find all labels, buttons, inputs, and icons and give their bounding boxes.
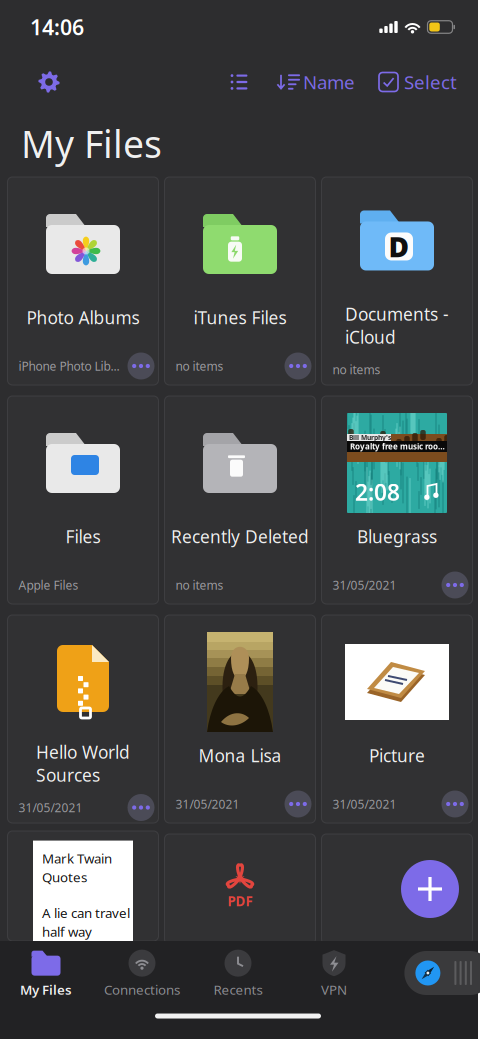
staticText: 2:08 bbox=[355, 477, 400, 507]
staticText: Quotes bbox=[42, 868, 87, 886]
staticText: PDF bbox=[227, 892, 252, 910]
button[interactable]: More options bbox=[127, 794, 154, 821]
button[interactable]: Hello World Sources bbox=[7, 615, 158, 823]
staticText: Royalty free music room.com bbox=[350, 441, 447, 452]
staticText: 14:06 bbox=[30, 13, 84, 41]
staticText: iPhone Photo Lib... bbox=[18, 358, 119, 374]
staticText: no items bbox=[332, 361, 380, 377]
staticText: Apple Files bbox=[18, 577, 78, 593]
staticText: A lie can travel bbox=[42, 904, 130, 922]
button[interactable]: Photo Albums bbox=[7, 177, 158, 385]
button[interactable]: More options bbox=[284, 352, 311, 379]
button[interactable]: Recently Deleted bbox=[164, 396, 315, 604]
button[interactable]: List view bbox=[221, 66, 256, 97]
staticText: 31/05/2021 bbox=[332, 796, 396, 812]
staticText: Mark Twain bbox=[42, 850, 112, 867]
button[interactable]: More options bbox=[284, 790, 311, 817]
staticText: iTunes Files bbox=[193, 306, 286, 329]
button[interactable]: Settings bbox=[28, 63, 70, 101]
staticText: Files bbox=[65, 525, 100, 548]
staticText: My Files bbox=[20, 981, 72, 998]
staticText: D bbox=[388, 228, 409, 265]
button[interactable]: Bill Murphy's bbox=[321, 396, 472, 604]
staticText: Mona Lisa bbox=[198, 744, 281, 767]
button[interactable]: More options bbox=[441, 790, 468, 817]
staticText: Photo Albums bbox=[26, 306, 139, 329]
staticText: 31/05/2021 bbox=[175, 796, 239, 812]
button[interactable]: Select bbox=[379, 64, 457, 100]
button[interactable]: iTunes Files bbox=[164, 177, 315, 385]
staticText: Name bbox=[303, 70, 355, 94]
button[interactable]: Files bbox=[7, 396, 158, 604]
staticText: no items bbox=[175, 577, 223, 593]
button[interactable]: VPN bbox=[286, 945, 382, 1003]
staticText: Connections bbox=[104, 981, 180, 998]
staticText: Bill Murphy's bbox=[349, 433, 391, 442]
staticText: Documents - iCloud bbox=[345, 302, 449, 348]
button[interactable]: More options bbox=[441, 571, 468, 598]
staticText: VPN bbox=[321, 981, 347, 998]
button[interactable]: Mona Lisa bbox=[164, 615, 315, 823]
staticText: Select bbox=[404, 70, 457, 94]
button[interactable]: Connections bbox=[94, 945, 190, 1003]
button[interactable]: My Files bbox=[0, 945, 94, 1003]
staticText: Recently Deleted bbox=[171, 525, 309, 548]
staticText: Picture bbox=[369, 744, 425, 767]
staticText: 31/05/2021 bbox=[332, 577, 396, 593]
staticText: Hello World Sources bbox=[36, 740, 130, 786]
staticText: My Files bbox=[21, 119, 162, 168]
button[interactable]: Back to Safari bbox=[404, 951, 480, 995]
staticText: half way bbox=[42, 923, 92, 940]
button[interactable]: Picture bbox=[321, 615, 472, 823]
button[interactable]: D bbox=[321, 177, 472, 385]
button[interactable]: Recents bbox=[190, 945, 286, 1003]
button[interactable]: Add bbox=[401, 860, 459, 918]
staticText: no items bbox=[175, 358, 223, 374]
staticText: Recents bbox=[213, 981, 262, 998]
staticText: Bluegrass bbox=[357, 525, 437, 548]
button[interactable]: More options bbox=[127, 352, 154, 379]
button[interactable]: Name bbox=[276, 64, 355, 100]
staticText: 31/05/2021 bbox=[18, 799, 82, 815]
